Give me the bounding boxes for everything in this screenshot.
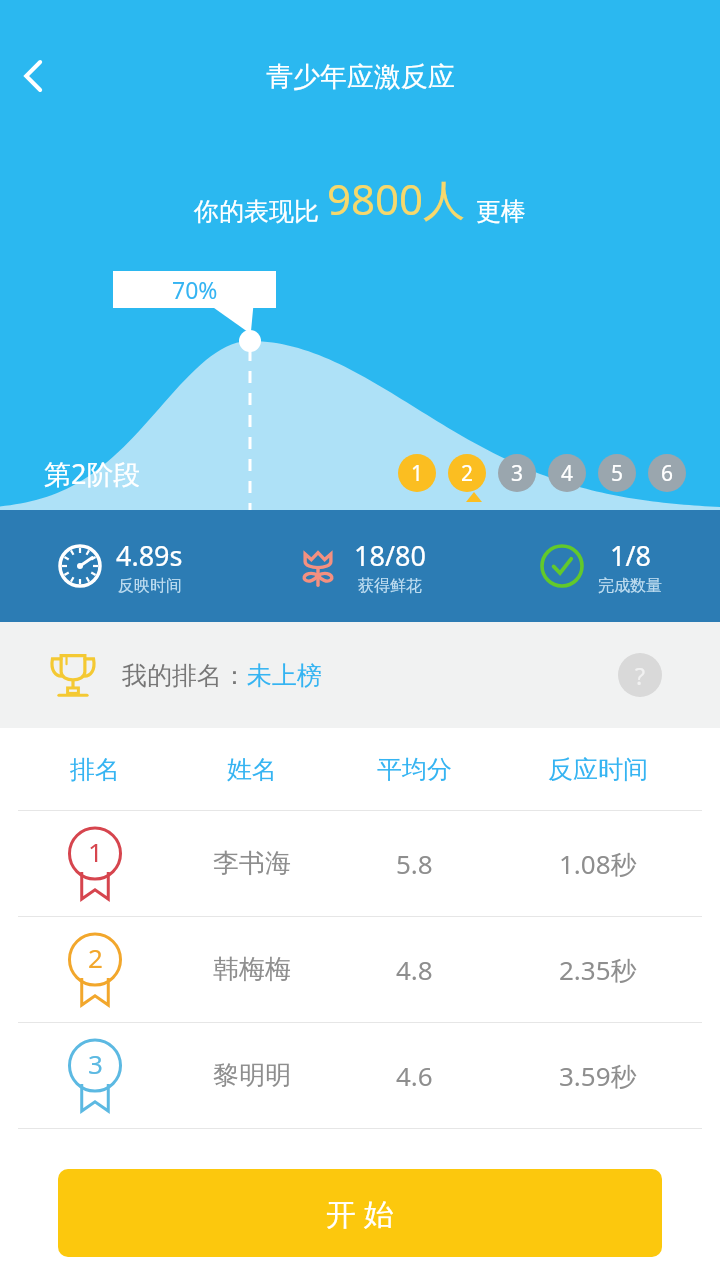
button[interactable]: 4 [548,454,586,492]
staticText: 反应时间 [548,754,648,785]
staticText: 1 [411,459,424,488]
staticText: 我的排名： [122,660,247,691]
staticText: 第2阶段 [44,455,141,492]
button[interactable]: 3 [498,454,536,492]
staticText: 9800人 [327,170,466,227]
button[interactable]: Back [10,52,58,100]
staticText: 6 [661,459,674,488]
staticText: 未上榜 [247,660,322,691]
staticText: 3 [88,1046,103,1081]
staticText: 平均分 [377,754,452,785]
staticText: 开 始 [326,1193,394,1234]
button[interactable]: 1 [0,811,720,916]
staticText: 黎明明 [213,1059,291,1092]
button[interactable]: Help [618,653,662,697]
button[interactable]: Reaction time [0,510,240,622]
other: Completed [539,543,585,589]
staticText: 李书海 [213,847,291,880]
staticText: 4 [561,459,574,488]
staticText: 3 [511,459,524,488]
staticText: 70% [172,274,218,305]
other: Reaction time [57,543,103,589]
staticText: 韩梅梅 [213,953,291,986]
staticText: 5 [611,459,624,488]
button[interactable]: 2 [448,454,486,492]
staticText: 排名 [70,754,120,785]
staticText: ? [635,660,645,691]
button[interactable]: 1 [398,454,436,492]
staticText: 你的表现比 [194,196,319,227]
staticText: 1 [88,834,103,869]
staticText: 18/80 [354,537,426,574]
staticText: 3.59秒 [559,1058,637,1094]
button[interactable]: 2 [0,917,720,1022]
staticText: 完成数量 [598,576,662,596]
staticText: 1.08秒 [559,846,637,882]
staticText: 5.8 [396,846,433,881]
staticText: 1/8 [610,537,651,574]
other: Flowers [295,543,341,589]
staticText: 青少年应激反应 [266,60,455,94]
button[interactable]: 3 [0,1023,720,1128]
button[interactable]: 6 [648,454,686,492]
button[interactable]: Flowers [240,510,480,622]
button[interactable]: 5 [598,454,636,492]
button[interactable]: Completed [480,510,720,622]
staticText: 获得鲜花 [358,576,422,596]
staticText: 姓名 [227,754,277,785]
staticText: 更棒 [476,196,526,227]
staticText: 2.35秒 [559,952,637,988]
staticText: 4.89s [116,537,183,574]
staticText: 2 [88,940,103,975]
staticText: 反映时间 [118,576,182,596]
button[interactable]: 开 始 [58,1169,662,1257]
staticText: 4.8 [396,952,433,987]
staticText: 2 [461,459,474,488]
staticText: 4.6 [396,1058,433,1093]
